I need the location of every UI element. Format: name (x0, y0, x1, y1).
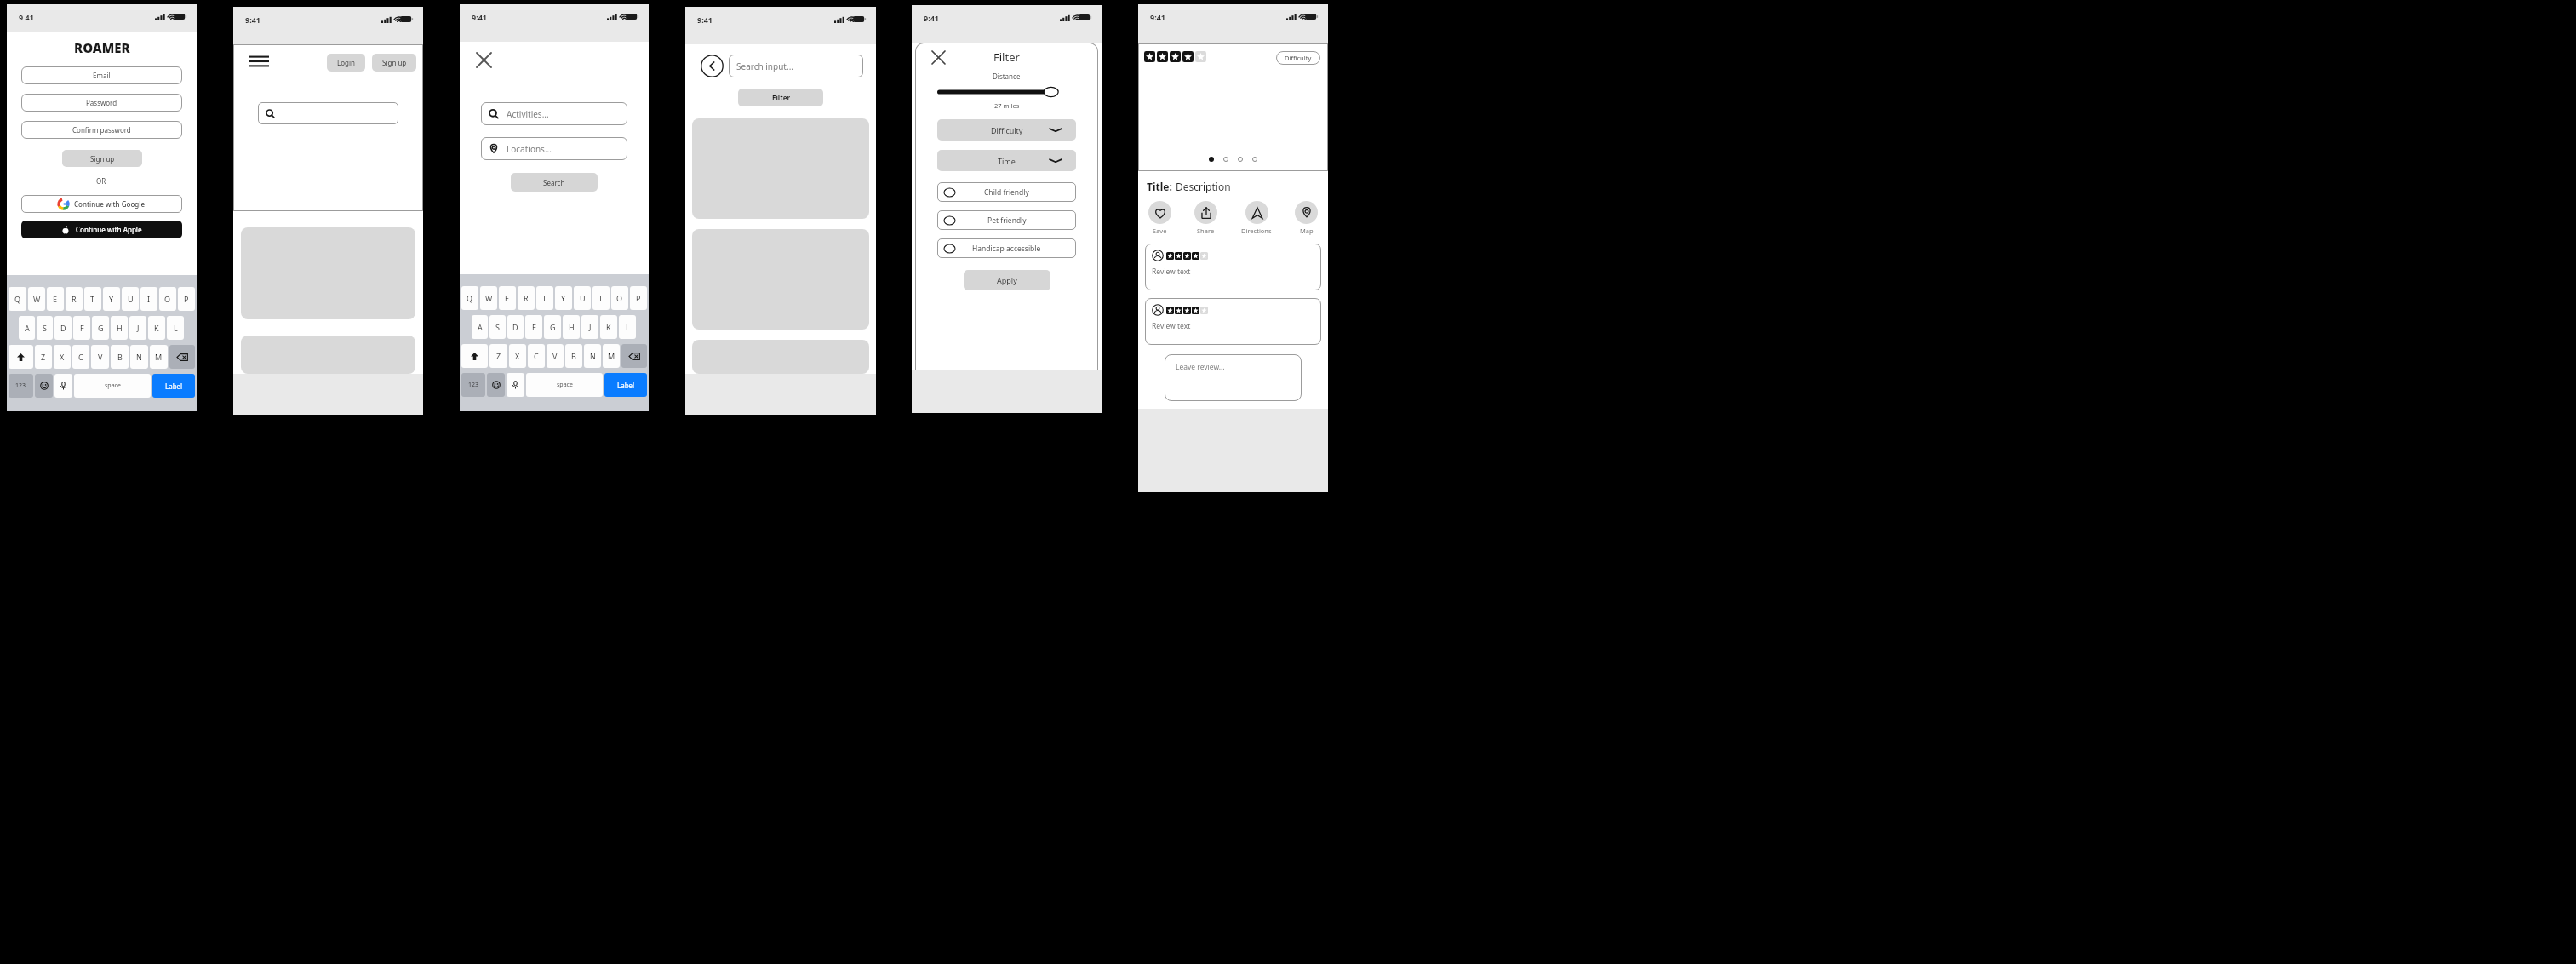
button[interactable]: J (129, 316, 146, 340)
button[interactable]: Dictate (54, 374, 72, 398)
button[interactable]: Shift (9, 345, 33, 369)
button[interactable]: T (84, 287, 101, 311)
button[interactable]: space (74, 374, 151, 398)
button[interactable]: Z (489, 344, 507, 368)
button[interactable]: Confirm password (21, 121, 182, 139)
button[interactable]: Backspace (169, 345, 195, 369)
button[interactable]: Password (21, 94, 182, 112)
button[interactable]: M (150, 345, 168, 369)
button[interactable]: C (72, 345, 89, 369)
button[interactable] (258, 102, 398, 124)
button[interactable]: Back (701, 55, 724, 77)
button[interactable]: D (54, 316, 72, 340)
button[interactable]: Review text (1145, 298, 1321, 345)
button[interactable]: B (565, 344, 582, 368)
button[interactable]: Filter (738, 89, 823, 106)
button[interactable]: Activities... (481, 102, 627, 125)
button[interactable]: D (507, 315, 524, 339)
button[interactable]: Email (21, 66, 182, 84)
button[interactable]: Emoji (35, 374, 53, 398)
button[interactable] (692, 340, 869, 374)
button[interactable]: Directions (1239, 201, 1274, 235)
button[interactable]: S (489, 315, 506, 339)
button[interactable]: Z (35, 345, 52, 369)
button[interactable]: R (518, 286, 535, 310)
button[interactable]: Review text (1145, 244, 1321, 290)
button[interactable]: P (178, 287, 195, 311)
button[interactable]: Emoji (487, 373, 505, 397)
button[interactable]: Shift (461, 344, 488, 368)
button[interactable]: S (37, 316, 53, 340)
button[interactable]: E (499, 286, 516, 310)
button[interactable]: 123 (461, 373, 485, 397)
button[interactable]: Save (1147, 201, 1173, 235)
button[interactable]: Search input... (729, 55, 863, 77)
button[interactable] (692, 229, 869, 330)
button[interactable]: P (630, 286, 647, 310)
button[interactable]: X (509, 344, 526, 368)
button[interactable]: Search (511, 173, 598, 192)
button[interactable]: Difficulty (1276, 51, 1320, 65)
button[interactable]: N (130, 345, 148, 369)
button[interactable]: space (526, 373, 603, 397)
button[interactable]: Sign up (62, 150, 142, 167)
button[interactable] (937, 86, 1076, 98)
button[interactable]: W (480, 286, 497, 310)
button[interactable]: N (584, 344, 601, 368)
button[interactable]: U (574, 286, 591, 310)
button[interactable]: X (54, 345, 71, 369)
button[interactable]: B (111, 345, 129, 369)
button[interactable]: K (600, 315, 617, 339)
button[interactable]: Sign up (372, 54, 416, 72)
button[interactable]: C (528, 344, 545, 368)
button[interactable]: Menu (249, 55, 269, 68)
button[interactable]: U (122, 287, 139, 311)
button[interactable]: F (73, 316, 90, 340)
button[interactable]: Share (1193, 201, 1219, 235)
button[interactable]: Leave review... (1165, 354, 1302, 401)
button[interactable]: Continue with Google (21, 195, 182, 213)
button[interactable]: Handicap accessible (937, 238, 1076, 258)
button[interactable]: Y (555, 286, 572, 310)
button[interactable]: G (544, 315, 561, 339)
button[interactable]: H (563, 315, 580, 339)
button[interactable]: M (603, 344, 620, 368)
button[interactable]: J (581, 315, 598, 339)
button[interactable]: E (47, 287, 64, 311)
button[interactable]: K (148, 316, 165, 340)
button[interactable]: Time (937, 150, 1076, 171)
button[interactable]: T (536, 286, 553, 310)
button[interactable]: I (592, 286, 610, 310)
button[interactable]: H (111, 316, 128, 340)
button[interactable]: Locations... (481, 137, 627, 160)
button[interactable]: O (159, 287, 176, 311)
button[interactable]: A (472, 315, 488, 339)
button[interactable] (241, 227, 415, 319)
button[interactable]: Pet friendly (937, 210, 1076, 230)
button[interactable]: Label (604, 373, 647, 397)
button[interactable]: Difficulty (937, 119, 1076, 141)
button[interactable]: V (547, 344, 564, 368)
button[interactable]: Dictate (507, 373, 524, 397)
button[interactable]: Map (1293, 201, 1319, 235)
button[interactable]: Login (327, 54, 365, 72)
button[interactable]: L (619, 315, 636, 339)
button[interactable]: A (19, 316, 35, 340)
button[interactable]: Child friendly (937, 182, 1076, 202)
button[interactable]: I (140, 287, 157, 311)
button[interactable]: L (167, 316, 184, 340)
button[interactable]: Continue with Apple (21, 221, 182, 238)
button[interactable]: Label (152, 374, 195, 398)
button[interactable]: Close (932, 51, 945, 64)
button[interactable]: F (525, 315, 542, 339)
button[interactable]: G (92, 316, 109, 340)
button[interactable]: Q (461, 286, 478, 310)
button[interactable]: W (28, 287, 45, 311)
button[interactable] (692, 118, 869, 219)
button[interactable]: R (66, 287, 83, 311)
button[interactable]: Y (103, 287, 120, 311)
button[interactable]: Q (9, 287, 26, 311)
button[interactable]: Apply (964, 270, 1050, 290)
button[interactable]: O (611, 286, 628, 310)
